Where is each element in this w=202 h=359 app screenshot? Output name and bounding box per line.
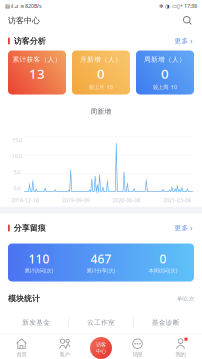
staticText: 分享留痕 [14,223,46,233]
staticText: ✻ ◑ ▭▯+ 17:38 [159,2,197,10]
staticText: 首页 [16,351,26,358]
staticText: 单位: 次 [177,295,194,302]
staticText: 0 [161,65,169,82]
staticText: ▤ ıl ⊿ ≋ 820B/s [5,2,42,10]
staticText: 较上周 ↑0 [153,83,177,90]
staticText: 累计访问(次) [24,267,53,274]
button[interactable]: 更多 [172,221,194,235]
staticText: 10.0 [12,153,22,160]
staticText: 较上月 ↑0 [89,83,113,90]
staticText: 我的 [175,351,185,358]
staticText: 2021-03-08 [163,197,191,204]
button[interactable]: 累计获客（人） [8,50,66,94]
staticText: 13 [29,65,45,82]
button[interactable]: 搜索 [181,14,194,27]
button[interactable]: 消息 [116,338,159,358]
staticText: › [190,36,192,46]
staticText: 中心 [96,348,106,355]
staticText: 客户 [59,351,69,358]
staticText: 本周访问(次) [148,267,177,274]
staticText: 周新增 [90,107,111,116]
staticText: 累计获客（人） [12,55,61,64]
staticText: 更多 [174,37,188,45]
button[interactable]: 更多 [172,34,194,48]
staticText: 0.0 [13,185,20,192]
staticText: 模块统计 [8,294,40,303]
staticText: 基金诊断 [152,318,180,327]
button[interactable]: 首页 [0,338,43,358]
staticText: › [190,223,192,233]
staticText: 新发基金 [22,318,50,327]
staticText: 15.0 [12,137,22,144]
button[interactable]: 基金诊断 [134,315,198,330]
button[interactable]: 云工作室 [69,315,133,330]
button[interactable]: 周新增（人） [136,50,194,94]
staticText: 2018-12-10 [11,197,39,204]
staticText: 周新增（人） [144,55,186,64]
staticText: 110 [28,251,49,267]
staticText: 2019-09-09 [62,197,90,204]
staticText: 2020-06-08 [112,197,140,204]
staticText: 访客分析 [14,36,46,46]
staticText: 月新增（人） [80,55,122,64]
staticText: 云工作室 [87,318,115,327]
staticText: 0 [159,251,166,267]
staticText: 更多 [174,224,188,232]
button[interactable]: 月新增（人） [72,50,130,94]
staticText: 访客中心 [8,16,40,25]
staticText: 访客 [96,341,106,348]
staticText: 467 [90,251,111,267]
button[interactable]: 客户 [43,338,86,358]
staticText: 5.0 [13,169,20,176]
staticText: 消息 [132,351,142,358]
button[interactable]: 访客 [90,337,112,359]
staticText: 累计分享(次) [86,267,115,274]
button[interactable]: 新发基金 [4,315,68,330]
staticText: 0 [97,65,105,82]
button[interactable]: 我的 [159,338,202,358]
